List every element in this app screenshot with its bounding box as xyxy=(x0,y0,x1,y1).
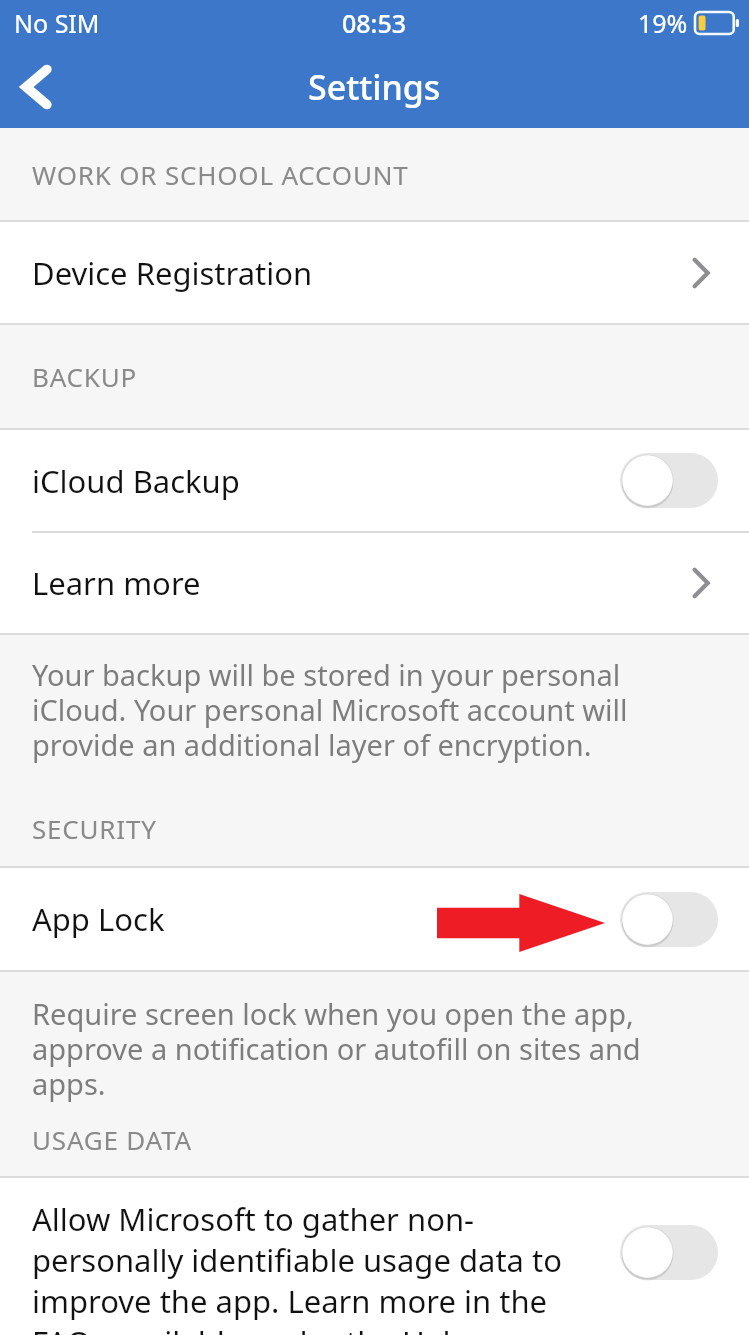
staticText: Your backup will be stored in your perso… xyxy=(32,655,709,765)
staticText: SECURITY xyxy=(32,811,157,846)
staticText: BACKUP xyxy=(32,359,138,394)
button[interactable]: Toggle, off xyxy=(620,892,718,947)
staticText: 08:53 xyxy=(342,6,407,40)
staticText: App Lock xyxy=(32,898,620,940)
staticText: Allow Microsoft to gather non-personally… xyxy=(32,1198,604,1335)
staticText: USAGE DATA xyxy=(32,1122,193,1157)
button[interactable]: Device Registration xyxy=(0,222,749,323)
button[interactable]: Toggle, off xyxy=(620,1225,718,1280)
staticText: WORK OR SCHOOL ACCOUNT xyxy=(32,157,409,192)
staticText: Device Registration xyxy=(32,252,675,294)
staticText: iCloud Backup xyxy=(32,460,620,502)
button[interactable]: Toggle, off xyxy=(620,453,718,508)
button[interactable]: Back xyxy=(0,51,72,123)
button[interactable]: Learn more xyxy=(0,533,749,633)
staticText: Require screen lock when you open the ap… xyxy=(32,994,709,1103)
staticText: 19% xyxy=(638,6,688,40)
button[interactable]: iCloud Backup xyxy=(0,430,749,531)
staticText: Learn more xyxy=(32,562,675,604)
button[interactable]: Allow Microsoft to gather non-personally… xyxy=(0,1178,749,1335)
staticText: No SIM xyxy=(14,6,100,40)
button[interactable]: App Lock xyxy=(0,868,749,970)
staticText: Settings xyxy=(308,64,441,110)
